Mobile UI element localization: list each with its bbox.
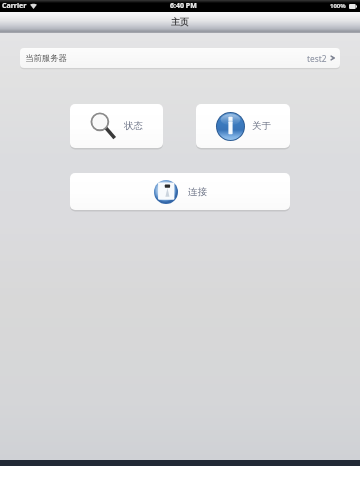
staticText: 关于 [252, 120, 271, 132]
other: Battery full [349, 4, 357, 9]
staticText: 当前服务器 [25, 53, 67, 64]
staticText: 6:40 PM [170, 1, 197, 11]
staticText: Carrier [2, 1, 27, 11]
other: Wi-Fi signal [30, 3, 37, 9]
staticText: 状态 [124, 120, 143, 132]
staticText: 连接 [188, 186, 207, 198]
button[interactable]: 当前服务器 [20, 48, 340, 68]
button[interactable]: 连接 [70, 173, 290, 210]
staticText: test2 [307, 53, 327, 64]
button[interactable]: 关于 [196, 104, 290, 148]
staticText: 100% [330, 2, 346, 10]
button[interactable]: 状态 [70, 104, 163, 148]
staticText: 主页 [171, 16, 189, 27]
